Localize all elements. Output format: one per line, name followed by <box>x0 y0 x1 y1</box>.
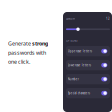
staticText: Special characters <box>68 91 90 95</box>
staticText: OPTIONS <box>66 39 77 42</box>
button[interactable]: Number <box>66 74 110 84</box>
staticText: 12 <box>106 17 110 20</box>
staticText: Number <box>68 77 79 81</box>
staticText: passwords with <box>8 49 46 56</box>
button[interactable]: Special characters <box>66 88 110 98</box>
staticText: Generate strong <box>8 40 48 47</box>
staticText: one click. <box>8 58 30 65</box>
staticText: LENGTH <box>66 17 75 20</box>
staticText: Lowercase letters <box>68 63 91 67</box>
button[interactable]: Uppercase letters <box>66 46 110 56</box>
button[interactable]: Lowercase letters <box>66 60 110 70</box>
staticText: Uppercase letters <box>68 49 92 53</box>
